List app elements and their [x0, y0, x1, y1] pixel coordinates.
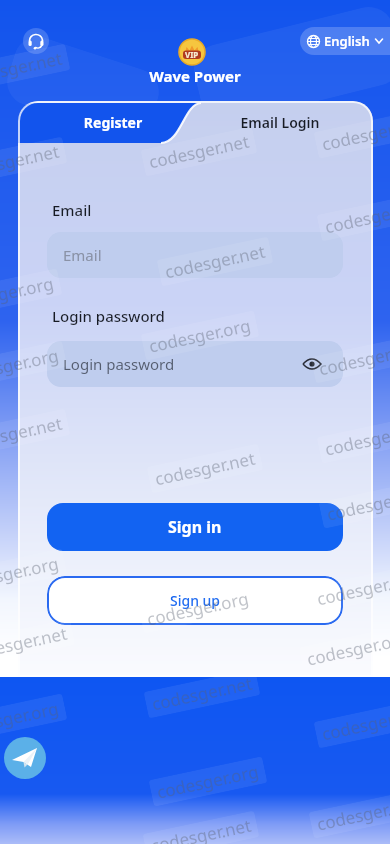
- staticText: codesger.net: [0, 412, 64, 455]
- staticText: codesger.net: [153, 447, 257, 490]
- staticText: codesger.org: [323, 416, 390, 460]
- staticText: codesger.net: [147, 130, 251, 173]
- staticText: codesger.org: [0, 551, 61, 595]
- staticText: codesger.net: [317, 337, 390, 380]
- staticText: Sign in: [168, 516, 222, 538]
- staticText: codesger.net: [0, 622, 69, 665]
- staticText: codesger.org: [325, 481, 390, 525]
- button[interactable]: Email Login: [200, 113, 360, 132]
- staticText: codesger.org: [0, 343, 61, 387]
- button[interactable]: Sign up: [47, 576, 343, 625]
- staticText: Login password: [63, 354, 175, 374]
- staticText: Wave Power: [0, 66, 390, 86]
- staticText: codesger.net: [0, 47, 64, 90]
- staticText: codesger.net: [323, 195, 390, 238]
- staticText: English: [324, 32, 370, 50]
- button[interactable]: [4, 737, 46, 779]
- button[interactable]: [23, 28, 49, 54]
- staticText: VIP: [185, 49, 199, 60]
- staticText: codesger.org: [145, 586, 251, 630]
- staticText: codesger.org: [0, 271, 56, 315]
- button[interactable]: Email: [47, 232, 343, 278]
- staticText: codesger.net: [163, 240, 267, 283]
- staticText: codesger.org: [147, 313, 253, 357]
- staticText: codesger.org: [315, 791, 390, 835]
- staticText: Email: [52, 200, 92, 220]
- staticText: codesger.net: [149, 814, 253, 844]
- staticText: codesger.org: [305, 626, 390, 670]
- staticText: codesger.net: [315, 567, 390, 610]
- staticText: codesger.org: [320, 111, 390, 155]
- button[interactable]: Sign in: [47, 503, 343, 551]
- staticText: codesger.net: [320, 702, 390, 745]
- staticText: codesger.org: [155, 759, 261, 803]
- staticText: Sign up: [170, 591, 221, 610]
- button[interactable]: Login password: [47, 341, 343, 387]
- button[interactable]: English: [300, 27, 390, 55]
- staticText: Email: [63, 245, 102, 265]
- staticText: Login password: [52, 306, 165, 326]
- staticText: codesger.org: [0, 696, 61, 740]
- staticText: codesger.net: [0, 140, 61, 183]
- button[interactable]: Register: [18, 113, 208, 132]
- staticText: codesger.net: [150, 672, 254, 715]
